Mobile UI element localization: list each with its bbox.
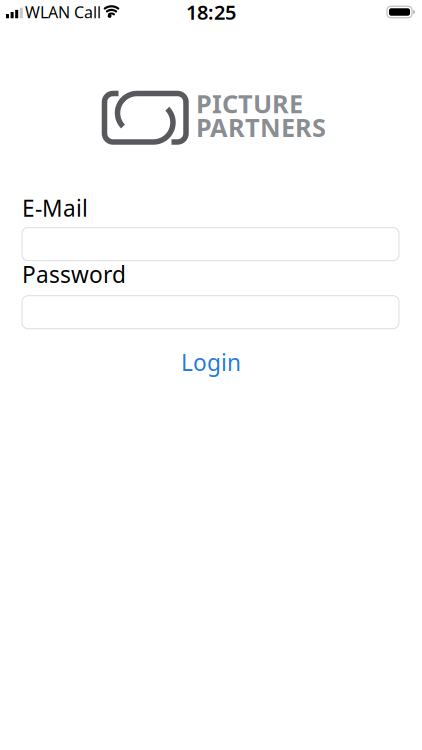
button[interactable]: Password xyxy=(22,296,399,329)
staticText: WLAN Call xyxy=(25,1,101,23)
button[interactable]: E-Mail xyxy=(22,228,399,261)
staticText: Password xyxy=(22,259,126,289)
button[interactable]: Login xyxy=(181,347,241,377)
staticText: E-Mail xyxy=(22,193,88,223)
staticText: Login xyxy=(181,347,241,377)
staticText: PICTURE xyxy=(196,86,303,120)
staticText: 18:25 xyxy=(186,0,236,25)
staticText: PARTNERS xyxy=(196,110,326,144)
